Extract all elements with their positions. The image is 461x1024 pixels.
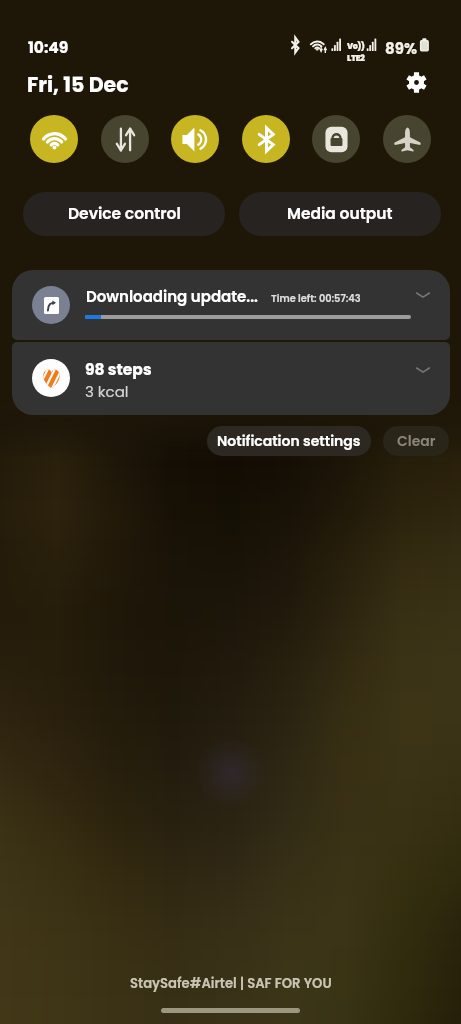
staticText: Downloading update... xyxy=(86,286,259,307)
button[interactable]: Screen lock xyxy=(312,115,360,163)
button[interactable]: Sound xyxy=(171,115,219,163)
button[interactable]: Bluetooth xyxy=(242,115,290,163)
staticText: Notification settings xyxy=(217,431,361,451)
staticText: Vo)) xyxy=(347,41,365,52)
button[interactable]: Mobile data xyxy=(101,115,149,163)
button[interactable]: Wi-Fi xyxy=(30,115,78,163)
button[interactable]: Notification settings xyxy=(207,426,371,456)
button[interactable]: Clear xyxy=(383,426,449,456)
button[interactable]: Airplane mode xyxy=(383,115,431,163)
staticText: 89% xyxy=(385,38,417,59)
staticText: Fri, 15 Dec xyxy=(27,70,129,99)
button[interactable]: 98 steps xyxy=(12,342,450,415)
button[interactable]: Media output xyxy=(239,192,441,236)
staticText: LTE2 xyxy=(347,52,365,64)
staticText: StaySafe#Airtel | SAF FOR YOU xyxy=(130,974,332,992)
staticText: 10:49 xyxy=(28,37,69,59)
staticText: 98 steps xyxy=(85,359,152,381)
button[interactable]: Settings xyxy=(400,66,432,98)
button[interactable]: Device control xyxy=(23,192,225,236)
button[interactable]: Downloading update... xyxy=(12,270,450,340)
staticText: Clear xyxy=(397,431,436,451)
staticText: Time left: 00:57:43 xyxy=(271,292,361,306)
staticText: Media output xyxy=(287,203,393,225)
staticText: 3 kcal xyxy=(85,381,129,402)
staticText: Device control xyxy=(68,203,181,225)
